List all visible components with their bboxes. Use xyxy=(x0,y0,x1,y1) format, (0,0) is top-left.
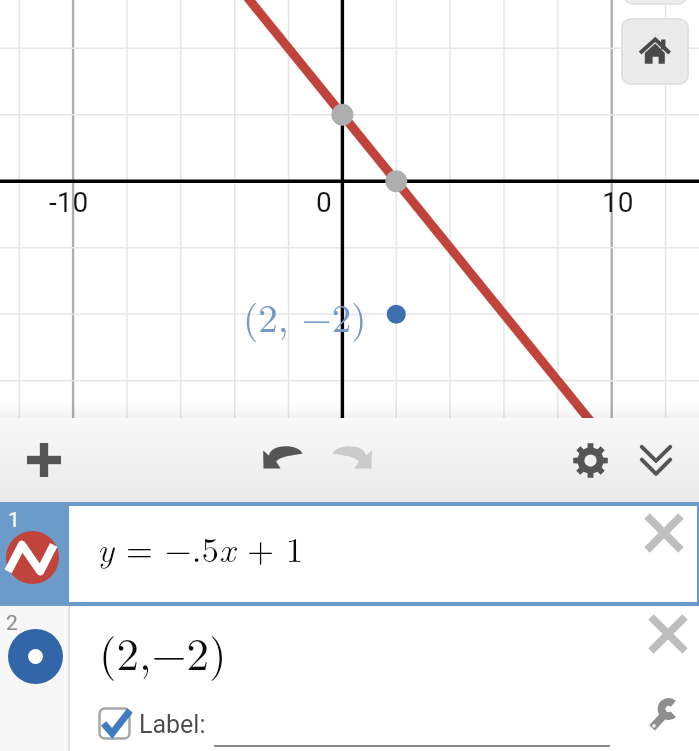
button[interactable]: Delete expression 1 xyxy=(629,502,699,606)
button[interactable]: Label settings xyxy=(631,684,695,746)
button[interactable]: Collapse keypad xyxy=(628,418,684,502)
staticText: (2, −2) xyxy=(243,288,367,343)
button[interactable]: y = −.5x + 1 xyxy=(0,502,699,606)
button[interactable]: Delete expression 2 xyxy=(637,606,699,661)
staticText: -10 xyxy=(49,186,89,219)
staticText: 0 xyxy=(316,186,332,219)
staticText: 2 xyxy=(6,611,18,636)
button[interactable]: Undo xyxy=(248,418,312,502)
button[interactable]: Toggle label xyxy=(98,707,131,740)
staticText: y = −.5x + 1 xyxy=(97,523,304,573)
staticText: 1 xyxy=(8,508,20,533)
staticText: (2,−2) xyxy=(99,619,227,683)
button[interactable]: 2 xyxy=(0,606,699,751)
button[interactable]: Add expression xyxy=(8,418,80,502)
staticText: 10 xyxy=(602,186,634,219)
button[interactable]: Redo xyxy=(318,418,382,502)
staticText: Label: xyxy=(139,710,206,739)
button[interactable]: Settings xyxy=(562,418,618,502)
button[interactable]: Home xyxy=(621,18,689,85)
button[interactable]: Zoom out xyxy=(623,0,688,5)
